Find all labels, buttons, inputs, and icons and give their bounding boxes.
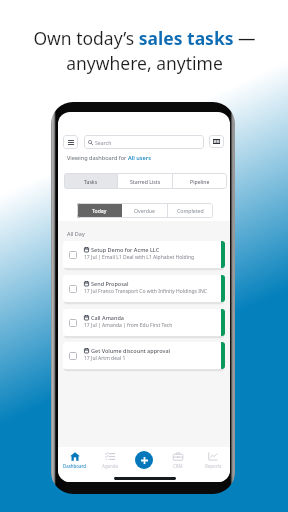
button[interactable]: Starred Lists (118, 173, 172, 189)
staticText: Reports (205, 463, 222, 469)
button[interactable]: Call Amanda (63, 309, 225, 336)
staticText: Starred Lists (130, 178, 161, 185)
staticText: Agenda (102, 463, 119, 469)
button[interactable]: CRM (162, 452, 194, 472)
staticText: Send Proposal (91, 280, 129, 287)
button[interactable]: Add (135, 451, 153, 469)
staticText: CRM (173, 463, 183, 469)
button[interactable]: Pipeline (173, 173, 227, 189)
button[interactable]: Map (209, 135, 224, 148)
button[interactable]: Menu (63, 135, 78, 149)
staticText: 17 Jul Artm deal 1 (84, 355, 126, 362)
button[interactable]: Send Proposal (63, 275, 225, 302)
button[interactable]: Reports (197, 452, 229, 472)
button[interactable]: Overdue (122, 203, 167, 218)
staticText: Tasks (84, 178, 98, 185)
staticText: Dashboard (63, 463, 87, 469)
staticText: Pipeline (190, 178, 210, 185)
staticText: 17 Jul | Email L1 Deal with L1 Alphabet … (84, 254, 195, 261)
staticText: Call Amanda (91, 314, 125, 321)
staticText: Setup Demo for Acme LLC (91, 246, 160, 253)
button[interactable]: Tasks (64, 173, 117, 189)
staticText: Today (92, 207, 107, 214)
button[interactable]: Get Volume discount approval (63, 342, 225, 369)
staticText: Viewing dashboard for All users (67, 154, 152, 162)
staticText: Search (95, 139, 112, 146)
button[interactable]: Agenda (94, 452, 126, 472)
button[interactable]: Today (77, 203, 122, 218)
button[interactable]: Completed (168, 203, 213, 218)
staticText: Overdue (134, 207, 155, 214)
staticText: 17 Jul Franco Transport Co with Infinity… (84, 288, 207, 295)
staticText: Completed (177, 207, 204, 214)
staticText: 17 Jul | Amanda | from Edu First Tech (84, 322, 173, 329)
staticText: Own today’s sales tasks — anywhere, anyt… (33, 26, 256, 75)
button[interactable]: Setup Demo for Acme LLC (63, 241, 225, 268)
button[interactable]: Search (84, 135, 204, 149)
button[interactable]: Dashboard (59, 452, 91, 472)
staticText: All Day (67, 230, 85, 237)
staticText: Get Volume discount approval (91, 347, 171, 354)
